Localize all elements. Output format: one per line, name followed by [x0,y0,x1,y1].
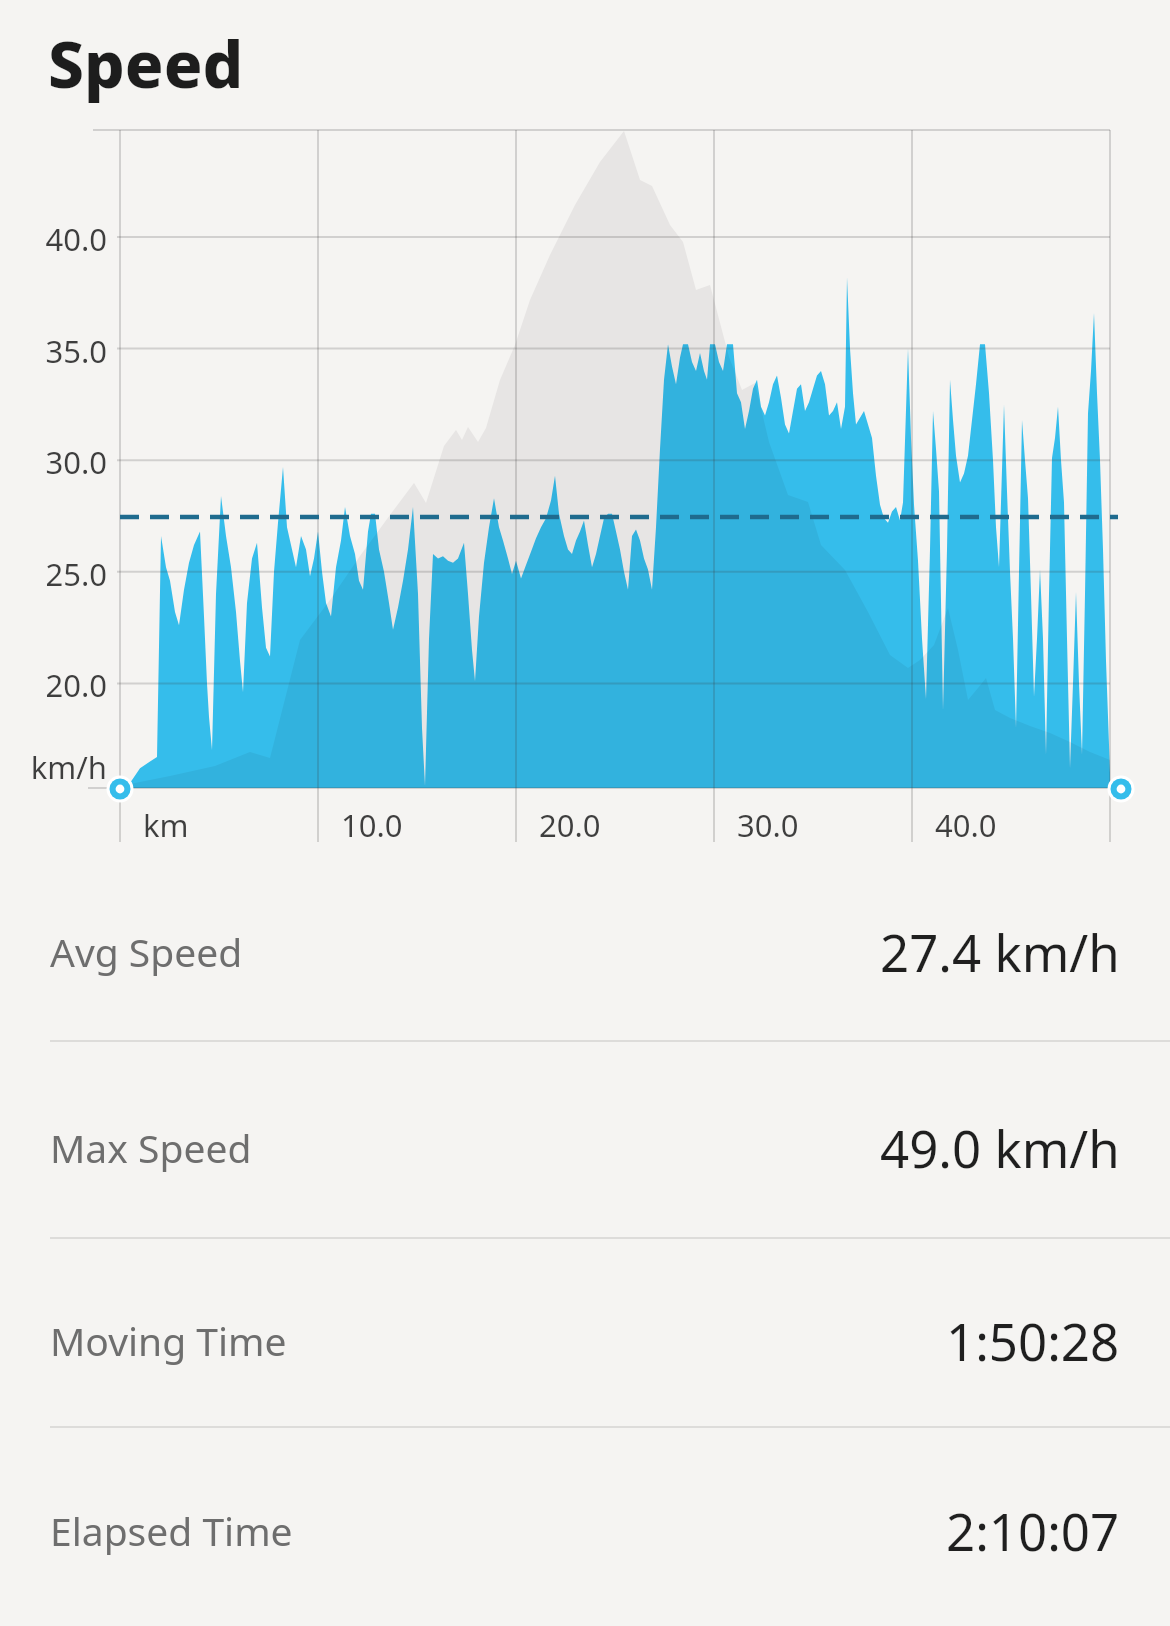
staticText: Speed [48,20,244,107]
staticText: 20.0 [0,664,107,706]
button[interactable]: Avg Speed [0,854,1170,1049]
staticText: 49.0 km/h [880,1113,1120,1182]
staticText: 35.0 [0,330,107,372]
button[interactable]: Moving Time [0,1246,1170,1435]
staticText: 30.0 [0,441,107,483]
staticText: 2:10:07 [946,1496,1120,1565]
staticText: 30.0 [737,804,857,846]
staticText: 10.0 [341,804,461,846]
button[interactable]: Elapsed Time [0,1435,1170,1626]
staticText: 40.0 [0,218,107,260]
staticText: 1:50:28 [946,1306,1120,1375]
staticText: 40.0 [935,804,1055,846]
staticText: 25.0 [0,553,107,595]
staticText: km [143,804,263,846]
staticText: km/h [0,746,107,788]
staticText: 20.0 [539,804,659,846]
staticText: Max Speed [50,1121,252,1174]
staticText: 27.4 km/h [880,917,1120,986]
button[interactable]: Max Speed [0,1049,1170,1246]
staticText: Elapsed Time [50,1504,293,1557]
staticText: Moving Time [50,1314,287,1367]
staticText: Avg Speed [50,925,243,978]
